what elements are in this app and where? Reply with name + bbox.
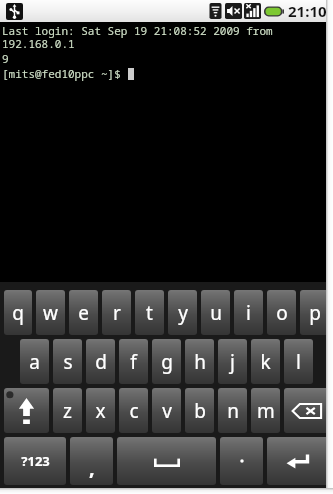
staticText: d	[95, 349, 107, 375]
staticText: m	[257, 398, 275, 424]
button[interactable]: a	[20, 339, 49, 384]
staticText: b	[194, 398, 206, 424]
button[interactable]: h	[185, 339, 214, 384]
button[interactable]: d	[86, 339, 115, 384]
staticText: l	[296, 349, 301, 375]
button[interactable]: Space	[117, 437, 216, 485]
staticText: u	[210, 300, 222, 326]
staticText: f	[130, 349, 137, 375]
button[interactable]: k	[251, 339, 280, 384]
staticText: y	[178, 300, 188, 326]
staticText: n	[227, 398, 239, 424]
staticText: p	[309, 300, 321, 326]
staticText: t	[146, 300, 153, 326]
button[interactable]: x	[86, 388, 115, 433]
staticText: [mits@fed10ppc ~]$	[2, 66, 128, 81]
staticText: h	[194, 349, 206, 375]
button[interactable]: l	[284, 339, 313, 384]
button[interactable]: ?123	[4, 437, 66, 485]
staticText: c	[129, 398, 139, 424]
button[interactable]: b	[185, 388, 214, 433]
button[interactable]: r	[102, 290, 131, 335]
button[interactable]: p	[300, 290, 329, 335]
staticText: Last login: Sat Sep 19 21:08:52 2009 fro…	[2, 23, 333, 51]
button[interactable]: o	[267, 290, 296, 335]
staticText: r	[113, 300, 121, 326]
button[interactable]: z	[53, 388, 82, 433]
button[interactable]: t	[135, 290, 164, 335]
button[interactable]: w	[36, 290, 65, 335]
staticText: x	[95, 398, 106, 424]
button[interactable]: f	[119, 339, 148, 384]
staticText: v	[162, 398, 172, 424]
button[interactable]: n	[218, 388, 247, 433]
staticText: i	[246, 300, 251, 326]
staticText: g	[161, 349, 173, 375]
staticText: w	[43, 300, 58, 326]
button[interactable]: e	[69, 290, 98, 335]
staticText: s	[63, 349, 73, 375]
button[interactable]: Backspace	[284, 388, 329, 433]
staticText: ,	[89, 454, 95, 481]
button[interactable]: v	[152, 388, 181, 433]
staticText: a	[29, 349, 40, 375]
button[interactable]: Period	[220, 437, 263, 485]
button[interactable]: m	[251, 388, 280, 433]
button[interactable]: j	[218, 339, 247, 384]
button[interactable]: q	[4, 290, 32, 335]
button[interactable]: i	[234, 290, 263, 335]
button[interactable]: Comma	[70, 437, 113, 485]
button[interactable]: g	[152, 339, 181, 384]
staticText: 9	[2, 51, 9, 66]
button[interactable]: y	[168, 290, 197, 335]
staticText: j	[230, 349, 235, 375]
staticText: ?123	[21, 452, 50, 470]
staticText: z	[63, 398, 72, 424]
button[interactable]: s	[53, 339, 82, 384]
staticText: k	[260, 349, 271, 375]
staticText: q	[12, 300, 24, 326]
button[interactable]: Enter	[267, 437, 329, 485]
button[interactable]: Shift	[4, 388, 49, 433]
staticText: o	[276, 300, 288, 326]
staticText: e	[78, 300, 89, 326]
button[interactable]: c	[119, 388, 148, 433]
staticText: 21:10	[288, 1, 327, 21]
button[interactable]: u	[201, 290, 230, 335]
